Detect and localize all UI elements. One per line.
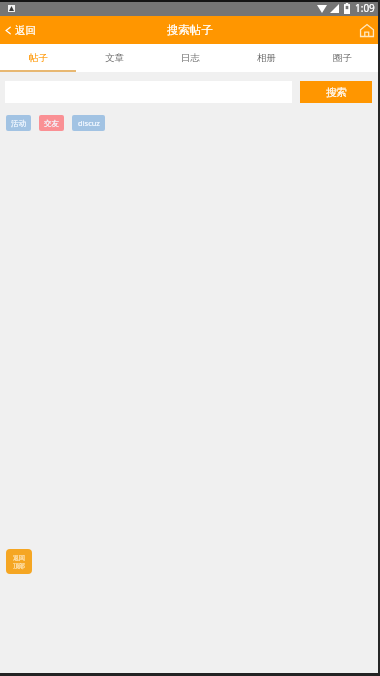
staticText: 返回	[13, 554, 25, 562]
staticText: 交友	[44, 119, 59, 128]
button[interactable]: 活动	[6, 115, 31, 131]
staticText: 搜索	[326, 86, 347, 99]
staticText: discuz	[78, 118, 100, 128]
staticText: 搜索帖子	[167, 23, 213, 37]
staticText: 活动	[11, 119, 26, 128]
button[interactable]: 日志	[152, 44, 228, 72]
button[interactable]: 交友	[39, 115, 64, 131]
button[interactable]: Back to top	[6, 549, 32, 574]
button[interactable]: 帖子	[0, 44, 76, 72]
staticText: 顶部	[13, 562, 25, 570]
button[interactable]: 圈子	[304, 44, 380, 72]
staticText: 圈子	[333, 52, 352, 64]
button[interactable]: 返回	[0, 16, 44, 44]
staticText: 文章	[105, 52, 124, 64]
staticText: 相册	[257, 52, 276, 64]
button[interactable]: 搜索	[300, 81, 372, 103]
staticText: 返回	[15, 24, 36, 37]
staticText: 1:09	[355, 1, 375, 15]
staticText: 日志	[181, 52, 200, 64]
button[interactable]: 相册	[228, 44, 304, 72]
staticText: 帖子	[29, 52, 48, 64]
button[interactable]: discuz	[72, 115, 105, 131]
button[interactable]: 文章	[76, 44, 152, 72]
button[interactable]: Home	[352, 16, 374, 44]
